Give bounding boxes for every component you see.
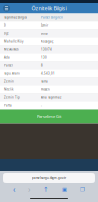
staticText: Zemin Tip	[4, 96, 20, 99]
button[interactable]: Parsel Bilgileri	[41, 16, 95, 19]
staticText: Mevkii/Adı	[4, 48, 19, 51]
staticText: parselsorgu.tkgm.gov.tr	[32, 176, 66, 180]
staticText: Kozağaç	[41, 40, 53, 43]
staticText: İl	[4, 24, 6, 27]
staticText: Hisseli	[41, 88, 50, 91]
staticText: ›	[28, 184, 30, 195]
staticText: 8	[41, 64, 43, 67]
staticText: Ana Taşınmaz	[41, 96, 61, 99]
staticText: Pafta	[4, 104, 12, 107]
staticText: Buca	[41, 32, 48, 35]
staticText: ❐	[80, 186, 85, 193]
staticText: Mahalle/Köy	[4, 40, 23, 43]
staticText: Tarla	[41, 80, 48, 83]
staticText: İzmir	[41, 24, 48, 27]
staticText: İlçe	[4, 32, 9, 35]
staticText: Öznitelik Bilgisi	[31, 5, 66, 12]
staticText: Parselime Git	[37, 114, 61, 119]
staticText: ↑	[43, 186, 49, 193]
staticText: Taşınmaz Bilgisi	[4, 16, 27, 19]
staticText: 4.543,01	[41, 72, 55, 75]
staticText: Ada	[4, 56, 10, 59]
staticText: 130/74	[41, 48, 52, 51]
staticText: Tapu Alanı	[4, 72, 20, 75]
staticText: Parsel	[4, 64, 13, 67]
staticText: ▣	[62, 186, 67, 193]
button[interactable]: Parselime Git	[0, 109, 98, 123]
button[interactable]: Menü	[0, 3, 13, 13]
staticText: Nitelik	[4, 88, 13, 91]
staticText: Zemin	[4, 80, 14, 83]
staticText: -	[41, 104, 42, 107]
staticText: 130	[41, 56, 47, 59]
staticText: Parsel Bilgileri	[41, 16, 63, 19]
staticText: ‹	[13, 184, 15, 195]
